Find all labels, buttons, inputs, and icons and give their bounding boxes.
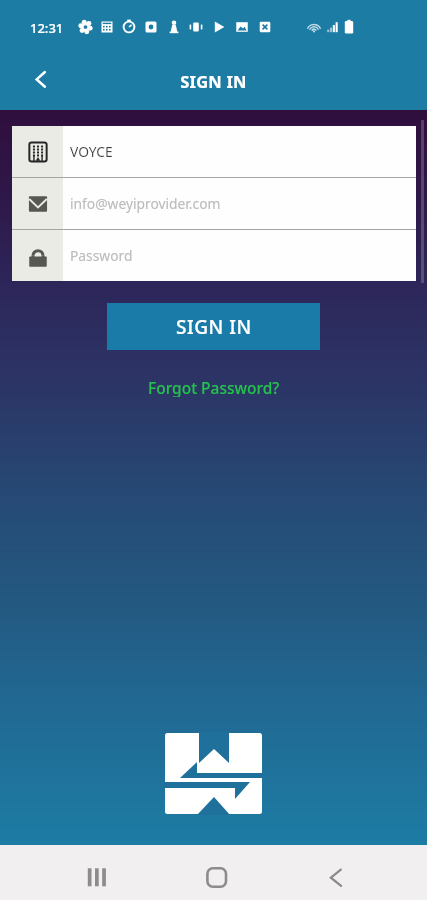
staticText: Password: [70, 246, 133, 265]
button[interactable]: info@weyiprovider.com: [12, 178, 416, 229]
button[interactable]: Recent apps: [66, 850, 128, 895]
staticText: SIGN IN: [0, 70, 427, 92]
button[interactable]: VOYCE: [12, 126, 416, 177]
button[interactable]: Home: [186, 850, 248, 895]
staticText: SIGN IN: [176, 314, 252, 340]
button[interactable]: SIGN IN: [107, 303, 320, 350]
button[interactable]: Password: [12, 230, 416, 281]
button[interactable]: Forgot Password?: [138, 374, 290, 400]
button[interactable]: Back: [305, 850, 367, 895]
staticText: info@weyiprovider.com: [70, 194, 221, 213]
button[interactable]: Back: [19, 61, 61, 103]
staticText: Forgot Password?: [148, 377, 280, 397]
staticText: 12:31: [30, 19, 64, 37]
staticText: VOYCE: [70, 142, 113, 161]
